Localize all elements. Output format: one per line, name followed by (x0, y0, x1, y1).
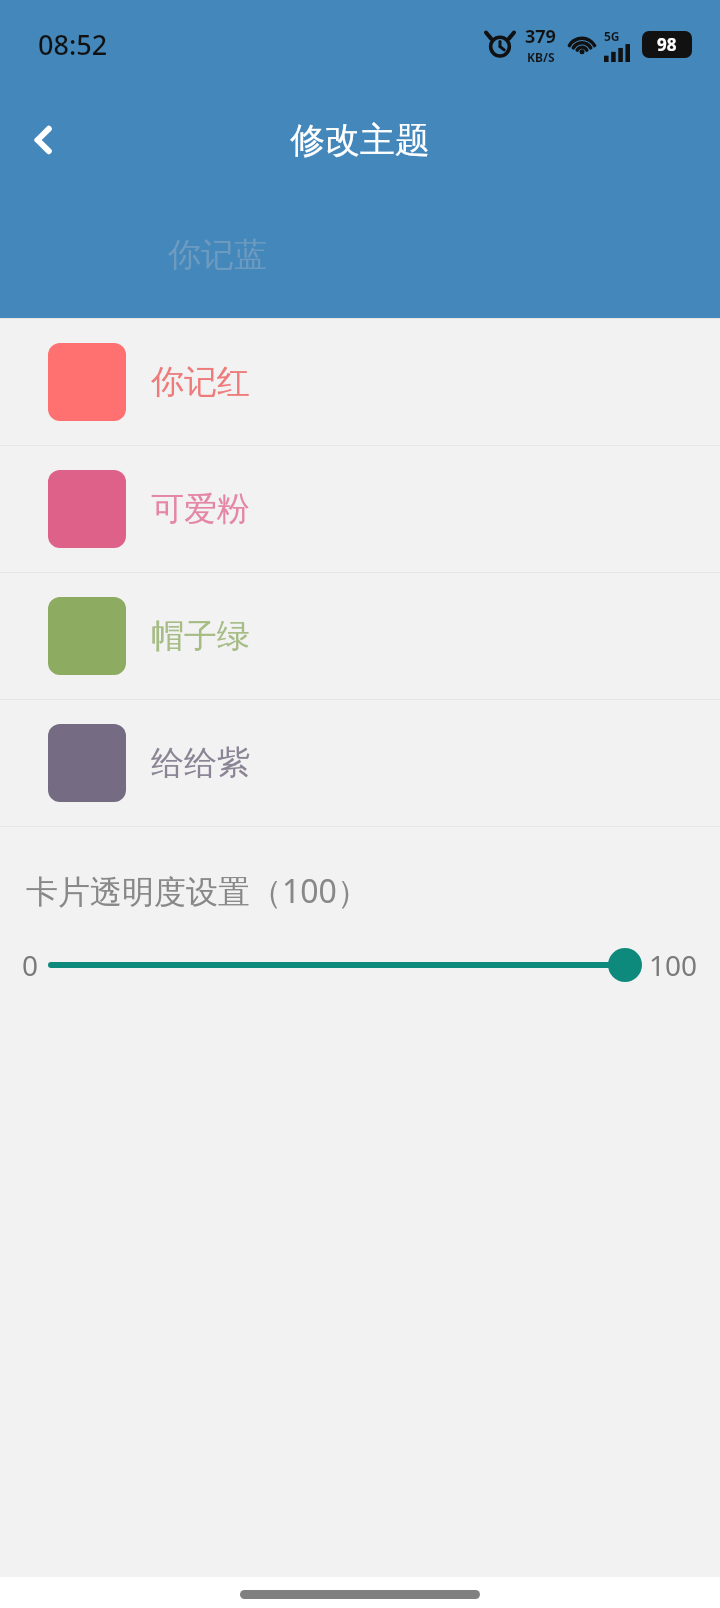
button[interactable]: 你记红 (0, 319, 720, 445)
button[interactable]: Back (8, 104, 80, 176)
button[interactable]: 帽子绿 (0, 573, 720, 699)
staticText: 你记红 (151, 361, 250, 403)
button[interactable]: 给给紫 (0, 700, 720, 826)
staticText: 卡片透明度设置（100） (26, 869, 369, 913)
staticText: 379 (525, 24, 556, 49)
staticText: 0 (22, 946, 39, 984)
staticText: 你记蓝 (168, 234, 267, 276)
button[interactable]: 你记蓝 (0, 192, 720, 318)
staticText: KB/S (527, 49, 555, 65)
staticText: 5G (604, 28, 620, 44)
staticText: 100 (649, 946, 698, 984)
staticText: 08:52 (38, 26, 108, 63)
staticText: 98 (657, 33, 677, 56)
button[interactable] (39, 943, 639, 987)
button[interactable]: 可爱粉 (0, 446, 720, 572)
staticText: 可爱粉 (151, 488, 250, 530)
staticText: 给给紫 (151, 742, 250, 784)
staticText: 帽子绿 (151, 615, 250, 657)
staticText: 修改主题 (290, 118, 430, 162)
